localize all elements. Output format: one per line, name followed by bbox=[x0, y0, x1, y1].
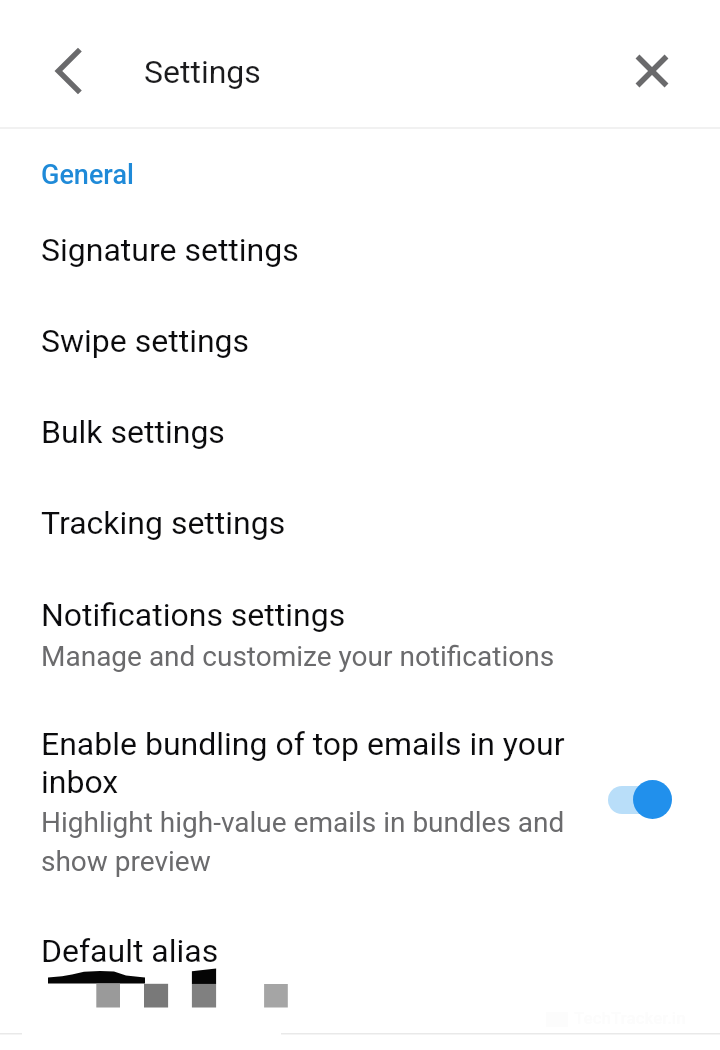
button[interactable]: Close bbox=[624, 43, 680, 99]
staticText: Bulk settings bbox=[41, 413, 575, 451]
button[interactable]: Tracking settings bbox=[0, 479, 720, 567]
staticText: Tracking settings bbox=[41, 504, 575, 542]
staticText: Swipe settings bbox=[41, 322, 575, 360]
staticText: Signature settings bbox=[41, 231, 575, 269]
staticText: Default alias bbox=[41, 932, 575, 970]
button[interactable]: Bulk settings bbox=[0, 388, 720, 476]
staticText: Manage and customize your notifications bbox=[41, 640, 555, 673]
staticText: Settings bbox=[144, 53, 261, 91]
button[interactable]: Back bbox=[39, 43, 95, 99]
button[interactable]: Default alias bbox=[0, 907, 720, 995]
staticText: Notifications settings bbox=[41, 596, 346, 634]
button[interactable]: General bbox=[41, 159, 134, 191]
button[interactable]: Swipe settings bbox=[0, 297, 720, 385]
staticText: Highlight high-value emails in bundles a… bbox=[41, 806, 575, 878]
button[interactable]: Enable bundling of top emails in your in… bbox=[0, 713, 720, 873]
button[interactable]: Notifications settings bbox=[0, 584, 720, 684]
button[interactable]: Toggle bundling of top emails bbox=[600, 772, 686, 828]
staticText: Enable bundling of top emails in your in… bbox=[41, 725, 575, 801]
button[interactable]: Signature settings bbox=[0, 206, 720, 294]
